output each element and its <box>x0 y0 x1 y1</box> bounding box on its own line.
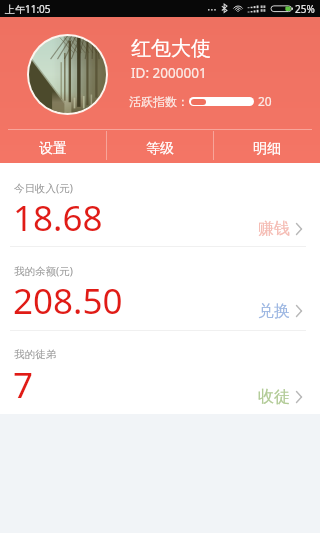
button[interactable]: 等级 <box>106 134 213 163</box>
staticText: 18.68 <box>13 194 103 242</box>
staticText: 今日收入(元) <box>14 181 73 195</box>
staticText: 兑换 <box>258 301 290 321</box>
staticText: 我的徒弟 <box>14 348 56 361</box>
button[interactable]: 我的余额(元) <box>0 247 320 330</box>
staticText: 208.50 <box>13 277 123 325</box>
staticText: 等级 <box>146 140 174 158</box>
button[interactable]: 我的徒弟 <box>0 331 320 414</box>
button[interactable]: 今日收入(元) <box>0 163 320 246</box>
button[interactable]: 设置 <box>0 134 106 163</box>
staticText: ID: 2000001 <box>131 64 207 82</box>
staticText: 收徒 <box>258 387 290 407</box>
staticText: 25% <box>295 2 315 16</box>
staticText: 红包大使 <box>131 36 211 61</box>
staticText: 上午11:05 <box>5 2 51 16</box>
staticText: 20 <box>258 93 272 109</box>
staticText: 设置 <box>39 140 67 158</box>
button[interactable]: 明细 <box>213 134 320 163</box>
staticText: 我的余额(元) <box>14 264 73 278</box>
staticText: 赚钱 <box>258 219 290 239</box>
staticText: 明细 <box>253 140 281 158</box>
staticText: 活跃指数： <box>129 94 189 109</box>
staticText: 7 <box>13 361 34 409</box>
